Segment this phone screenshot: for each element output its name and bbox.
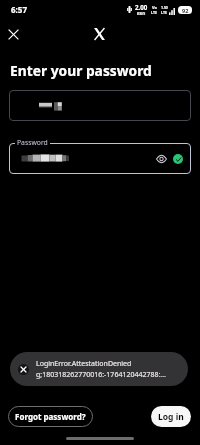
staticText: KB/S [137,11,146,16]
staticText: 1.50 [161,5,168,10]
staticText: Forgot password? [15,411,86,422]
staticText: Vo [152,5,158,10]
button[interactable] [9,143,191,174]
staticText: 92 [182,7,189,14]
staticText: 6:57 [11,4,27,15]
staticText: LoginError.AttestationDenied [36,359,132,369]
staticText: g;180318262770016:-1764120442788:... [36,370,166,380]
staticText: LTE [151,10,158,15]
button[interactable]: Forgot password? [8,406,93,427]
staticText: Password [17,138,48,147]
staticText: Log in [158,411,184,423]
button[interactable]: Close [2,23,25,46]
staticText: 2.00 [135,3,148,11]
button[interactable] [9,90,191,121]
button[interactable]: Log in [151,406,191,427]
staticText: Enter your password [10,61,152,80]
staticText: LTE [161,10,168,15]
button[interactable]: Show password [153,150,170,167]
